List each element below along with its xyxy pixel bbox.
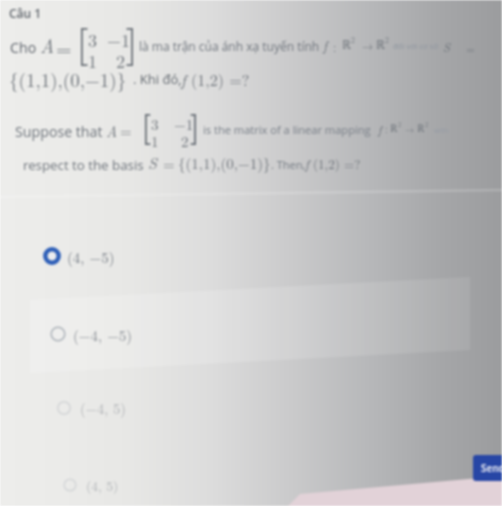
staticText: Suppose that bbox=[15, 122, 103, 141]
staticText: = bbox=[163, 153, 175, 174]
staticText: (4, 5) bbox=[86, 476, 119, 495]
staticText: ℝ bbox=[376, 36, 385, 53]
staticText: Câu 1 bbox=[9, 5, 42, 21]
staticText: (−4, −5) bbox=[73, 324, 133, 345]
button[interactable]: (−4, 5) bbox=[46, 389, 236, 427]
staticText: f bbox=[323, 36, 328, 55]
staticText: 2 bbox=[116, 48, 125, 74]
staticText: 2 bbox=[181, 130, 189, 151]
staticText: 1 bbox=[151, 130, 159, 151]
staticText: . Then, bbox=[271, 157, 306, 172]
staticText: Send bbox=[481, 461, 502, 475]
staticText: 3 bbox=[88, 27, 97, 53]
staticText: A bbox=[40, 32, 55, 59]
staticText: Cho bbox=[10, 38, 37, 57]
staticText: {(1,1),(0,−1)} bbox=[178, 152, 271, 173]
staticText: {(1,1),(0,−1)} bbox=[9, 66, 127, 93]
staticText: −1 bbox=[174, 113, 194, 134]
staticText: . Khi đó, bbox=[133, 70, 182, 88]
button[interactable]: Send bbox=[473, 455, 502, 481]
staticText: f bbox=[378, 121, 382, 137]
staticText: 2 bbox=[398, 120, 402, 129]
staticText: 2 bbox=[425, 120, 429, 129]
staticText: is the matrix of a linear mapping bbox=[203, 122, 371, 137]
staticText: S bbox=[443, 38, 451, 56]
button[interactable]: (4, −5) bbox=[34, 237, 224, 275]
staticText: ℝ bbox=[342, 36, 351, 53]
staticText: 2 bbox=[351, 34, 355, 45]
staticText: S bbox=[148, 151, 157, 174]
staticText: là ma trận của ánh xạ tuyến tính bbox=[139, 38, 320, 54]
staticText: (−4, 5) bbox=[80, 398, 126, 419]
staticText: 2 bbox=[385, 34, 389, 45]
staticText: → bbox=[405, 123, 415, 136]
staticText: = bbox=[56, 33, 72, 61]
staticText: (4, −5) bbox=[67, 246, 115, 267]
staticText: respect to the basis bbox=[23, 156, 144, 174]
button[interactable]: (4, 5) bbox=[52, 466, 242, 504]
staticText: = bbox=[466, 40, 475, 56]
staticText: → bbox=[362, 38, 373, 54]
button[interactable]: (−4, −5) bbox=[40, 315, 230, 353]
staticText: f bbox=[181, 68, 186, 91]
staticText: ℝ bbox=[417, 121, 425, 135]
staticText: (1,2) =? bbox=[313, 154, 361, 172]
staticText: 1 bbox=[88, 48, 97, 74]
staticText: ℝ bbox=[390, 121, 398, 135]
staticText: đối với cơ sở bbox=[393, 41, 439, 52]
staticText: −1 bbox=[107, 27, 131, 53]
staticText: f bbox=[305, 154, 309, 172]
staticText: A bbox=[106, 120, 118, 141]
staticText: (1,2) =? bbox=[191, 68, 250, 91]
staticText: = bbox=[120, 120, 132, 141]
staticText: 3 bbox=[151, 113, 159, 134]
